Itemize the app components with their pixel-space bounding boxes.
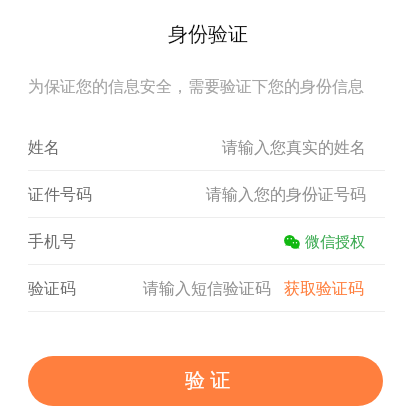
other: WeChat authorization [284, 235, 300, 249]
staticText: 证件号码 [28, 185, 92, 205]
button[interactable]: WeChat authorization [284, 233, 366, 252]
staticText: 请输入您真实的姓名 [222, 138, 366, 158]
staticText: 请输入您的身份证号码 [206, 185, 366, 205]
button[interactable]: 验 证 [28, 356, 383, 406]
staticText: 姓名 [28, 138, 60, 158]
staticText: 为保证您的信息安全，需要验证下您的身份信息 [28, 77, 364, 97]
button[interactable]: 证件号码 [0, 171, 407, 217]
staticText: 验证码 [28, 279, 76, 299]
staticText: 手机号 [28, 232, 76, 252]
button[interactable]: 验证码 [0, 265, 407, 311]
staticText: 请输入短信验证码 [143, 279, 271, 299]
button[interactable]: 获取验证码 [284, 279, 364, 299]
button[interactable]: 姓名 [0, 124, 407, 170]
staticText: 微信授权 [305, 233, 365, 252]
staticText: 验 证 [185, 366, 231, 393]
staticText: 获取验证码 [284, 279, 364, 299]
button[interactable]: 手机号 [0, 218, 407, 264]
staticText: 身份验证 [168, 22, 248, 47]
